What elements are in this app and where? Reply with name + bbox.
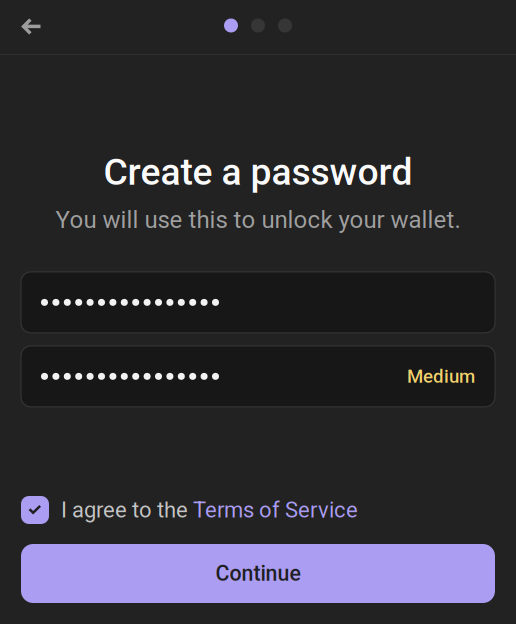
staticText: Continue: [215, 561, 300, 586]
staticText: I agree to the: [61, 497, 193, 523]
button[interactable]: Confirm password, strength Medium: [0, 346, 516, 407]
button[interactable]: Continue: [0, 544, 516, 603]
staticText: Create a password: [103, 150, 412, 194]
staticText: You will use this to unlock your wallet.: [55, 206, 460, 234]
button[interactable]: Password: [0, 272, 516, 333]
staticText: Terms of Service: [193, 497, 358, 523]
button[interactable]: I agree to the: [0, 496, 516, 524]
staticText: Medium: [407, 365, 475, 387]
button[interactable]: Back: [0, 0, 57, 54]
